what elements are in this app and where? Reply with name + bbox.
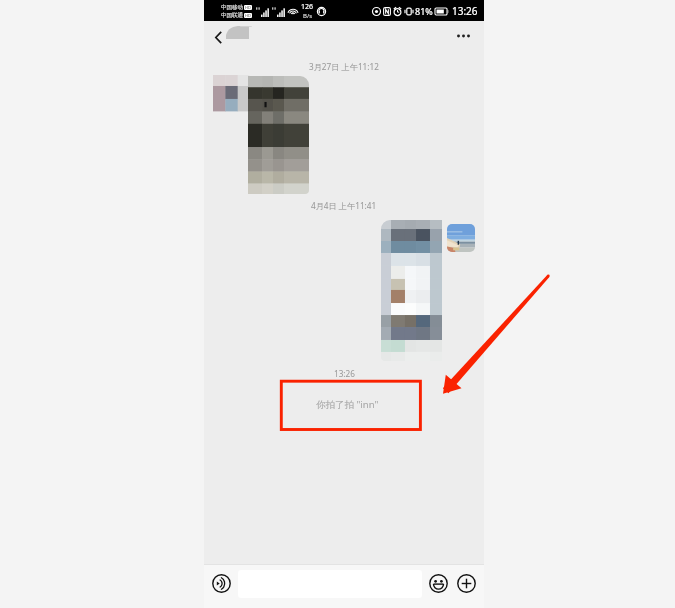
button[interactable]	[447, 224, 475, 252]
button[interactable]: Voice input	[210, 572, 233, 595]
button[interactable]: Emoji	[427, 572, 450, 595]
staticText: HD	[245, 5, 251, 10]
button[interactable]: More functions	[455, 572, 478, 595]
staticText: 3月27日 上午11:12	[309, 61, 379, 72]
staticText: 中国联通	[221, 12, 243, 19]
button[interactable]	[226, 26, 249, 39]
staticText: 4月4日 上午11:41	[311, 200, 377, 211]
button[interactable]	[248, 76, 309, 194]
staticText: 你拍了拍 "inn"	[316, 398, 379, 411]
staticText: 81%	[415, 5, 433, 17]
staticText: 13:26	[334, 368, 355, 379]
button[interactable]: Back	[210, 25, 226, 49]
button[interactable]: More options	[447, 24, 479, 48]
staticText: 中国移动	[221, 4, 243, 11]
staticText: HD	[245, 13, 251, 18]
staticText: B/s	[303, 12, 313, 20]
button[interactable]	[213, 75, 249, 111]
staticText: 126	[301, 2, 314, 12]
button[interactable]	[381, 220, 442, 361]
staticText: 13:26	[452, 4, 478, 18]
